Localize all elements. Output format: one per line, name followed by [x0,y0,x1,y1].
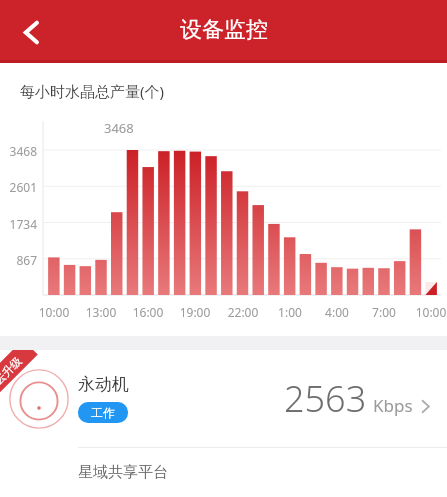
staticText: 10:00 [408,304,447,320]
staticText: 2601 [0,179,37,195]
staticText: 19:00 [172,304,218,320]
staticText: 7:00 [361,304,407,320]
staticText: 10:00 [31,304,77,320]
button[interactable]: 去升级 [0,350,66,416]
staticText: 1734 [0,216,37,232]
staticText: 永动机 [78,374,129,395]
staticText: Kbps [373,394,413,417]
staticText: 13:00 [78,304,124,320]
staticText: 867 [0,252,37,268]
button[interactable]: Back [4,5,58,59]
button[interactable]: 永动机 [0,350,447,447]
staticText: 星域共享平台 [78,463,168,482]
staticText: 工作 [91,405,115,420]
staticText: 设备监控 [180,16,268,44]
staticText: 16:00 [125,304,171,320]
staticText: 2563 [284,374,367,423]
staticText: 去升级 [0,354,24,387]
staticText: 3468 [104,119,134,137]
button[interactable]: 星域共享平台 [0,448,447,497]
staticText: 3468 [0,143,37,159]
staticText: 1:00 [267,304,313,320]
staticText: 每小时水晶总产量(个) [20,81,165,101]
staticText: 22:00 [220,304,266,320]
staticText: 4:00 [314,304,360,320]
